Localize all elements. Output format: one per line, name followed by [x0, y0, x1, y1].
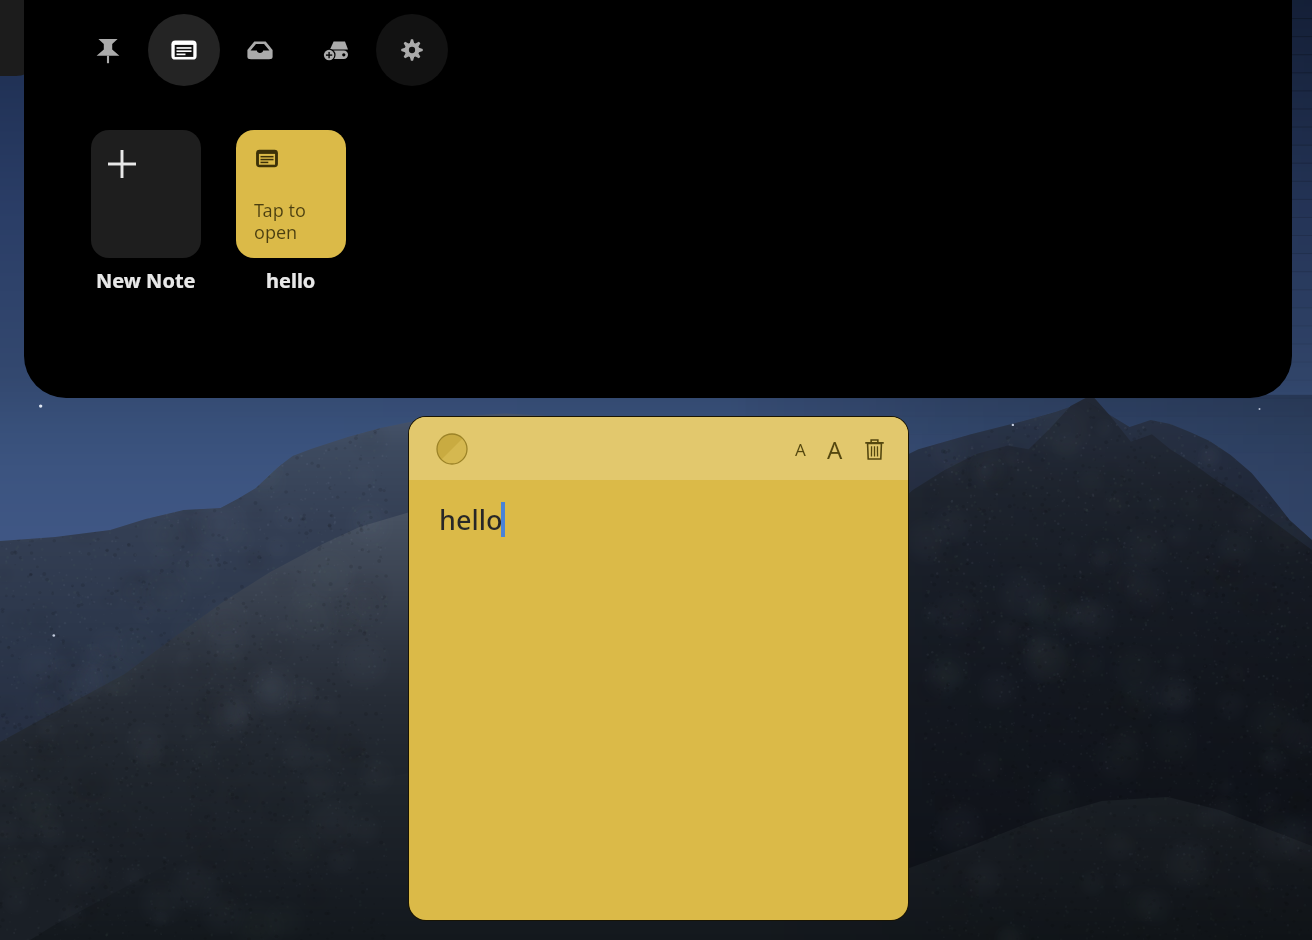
button[interactable]: Increase text size [818, 427, 852, 471]
button[interactable]: Delete note [857, 427, 891, 471]
button[interactable]: Tap to open [236, 130, 346, 294]
button[interactable]: Inbox [224, 14, 296, 86]
staticText: hello [439, 501, 503, 538]
button[interactable]: Add device [300, 14, 372, 86]
button[interactable]: Pin [72, 14, 144, 86]
staticText: hello [266, 267, 316, 294]
button[interactable]: New Note [91, 130, 201, 294]
staticText: Tap to open [254, 198, 306, 245]
button[interactable]: Settings [376, 14, 448, 86]
button[interactable]: Decrease text size [783, 427, 817, 471]
staticText: A [827, 433, 843, 466]
button[interactable]: Notes [148, 14, 220, 86]
staticText: New Note [96, 267, 196, 294]
staticText: A [795, 438, 806, 461]
button[interactable]: Note colour [436, 433, 468, 465]
